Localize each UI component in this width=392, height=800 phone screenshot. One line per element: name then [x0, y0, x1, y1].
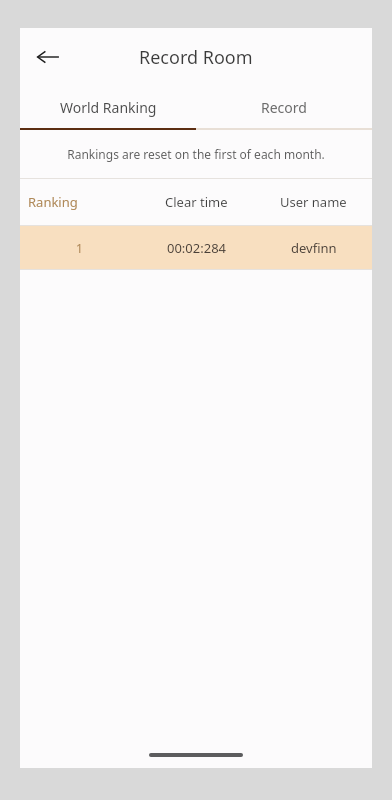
- staticText: 00:02:284: [167, 239, 227, 257]
- staticText: World Ranking: [60, 98, 157, 117]
- staticText: devfinn: [291, 239, 337, 257]
- staticText: Clear time: [165, 193, 228, 211]
- button[interactable]: World Ranking: [20, 86, 196, 128]
- staticText: Record: [261, 98, 307, 117]
- staticText: 1: [76, 240, 83, 256]
- button[interactable]: Record: [196, 86, 372, 128]
- button[interactable]: Back: [28, 37, 68, 77]
- staticText: Record Room: [139, 45, 253, 70]
- staticText: Ranking: [28, 193, 78, 211]
- staticText: Rankings are reset on the first of each …: [67, 146, 325, 162]
- staticText: User name: [280, 193, 347, 211]
- button[interactable]: 1: [20, 226, 372, 269]
